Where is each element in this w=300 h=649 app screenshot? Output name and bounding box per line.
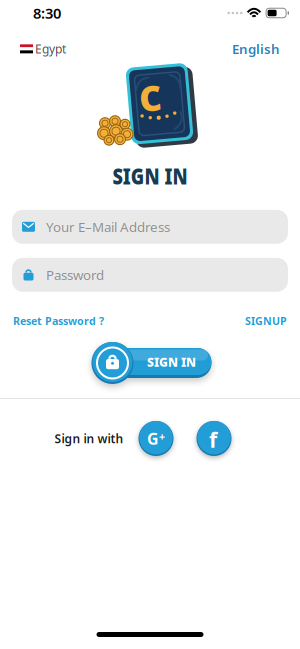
staticText: SIGN IN (147, 354, 196, 370)
staticText: English (232, 40, 280, 58)
staticText: Sign in with (54, 430, 123, 446)
button[interactable]: English (232, 40, 280, 58)
button[interactable]: SIGNUP (245, 314, 287, 328)
staticText: Reset Password ? (13, 314, 104, 328)
staticText: + (159, 429, 165, 444)
button[interactable]: Password (0, 258, 300, 292)
staticText: C (139, 74, 161, 120)
staticText: SIGNUP (245, 314, 287, 328)
staticText: 8:30 (33, 3, 61, 23)
button[interactable]: Reset Password ? (13, 314, 104, 328)
button[interactable]: Your E–Mail Address (0, 210, 300, 244)
button[interactable]: Sign in with Google (138, 421, 173, 456)
staticText: G (147, 428, 159, 449)
staticText: SIGN IN (103, 161, 197, 191)
staticText: Password (46, 266, 104, 284)
staticText: Your E–Mail Address (46, 218, 170, 236)
staticText: f (209, 425, 217, 454)
button[interactable]: Sign in with Facebook (196, 421, 231, 456)
staticText: Egypt (35, 41, 66, 57)
button[interactable]: Country: Egypt (20, 41, 66, 57)
button[interactable]: SIGN IN (90, 342, 210, 384)
